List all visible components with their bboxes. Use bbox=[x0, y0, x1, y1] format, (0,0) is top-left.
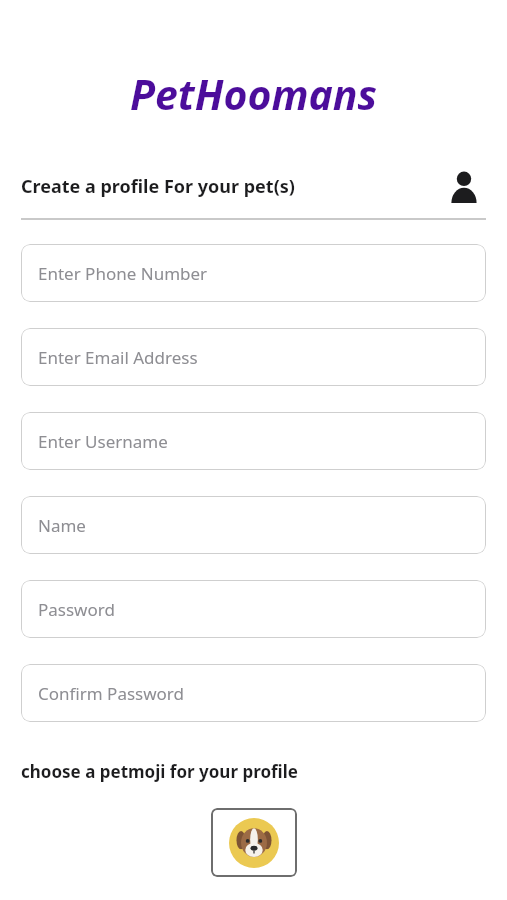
button[interactable]: Enter Username bbox=[21, 412, 486, 470]
button[interactable]: Choose dog petmoji bbox=[211, 808, 297, 877]
staticText: choose a petmoji for your profile bbox=[21, 760, 298, 783]
button[interactable]: Password bbox=[21, 580, 486, 638]
staticText: Enter Email Address bbox=[38, 346, 198, 369]
staticText: Confirm Password bbox=[38, 682, 184, 705]
staticText: Create a profile For your pet(s) bbox=[21, 174, 442, 199]
button[interactable]: Name bbox=[21, 496, 486, 554]
button[interactable]: Enter Email Address bbox=[21, 328, 486, 386]
button[interactable]: Enter Phone Number bbox=[21, 244, 486, 302]
staticText: Enter Username bbox=[38, 430, 168, 453]
staticText: Password bbox=[38, 598, 115, 621]
button[interactable]: Profile bbox=[442, 164, 486, 208]
staticText: Enter Phone Number bbox=[38, 262, 208, 285]
staticText: Name bbox=[38, 514, 86, 537]
staticText: PetHoomans bbox=[130, 66, 377, 122]
button[interactable]: Confirm Password bbox=[21, 664, 486, 722]
